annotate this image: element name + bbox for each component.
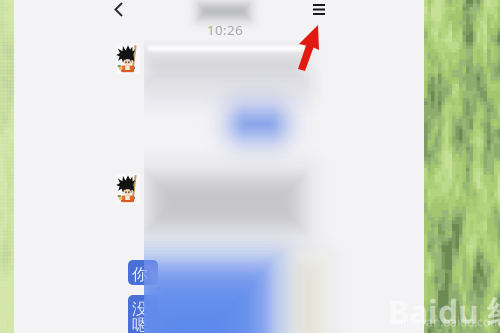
- button[interactable]: Menu: [307, 0, 337, 24]
- staticText: Baidu 经验: [388, 290, 500, 333]
- staticText: 你: [132, 264, 148, 284]
- staticText: 10:26: [207, 21, 243, 39]
- staticText: 嗯: [132, 315, 148, 333]
- button[interactable]: Back: [100, 0, 130, 24]
- staticText: 没: [132, 299, 148, 319]
- staticText: jingyan.baidu.com: [400, 314, 500, 330]
